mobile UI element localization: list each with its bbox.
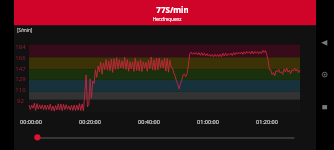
staticText: 110 <box>15 86 26 94</box>
button[interactable]: Home <box>317 67 333 83</box>
staticText: 01:20:00 <box>253 118 281 125</box>
staticText: 77S/min <box>156 4 188 15</box>
button[interactable]: Recent apps <box>317 99 333 115</box>
button[interactable]: Back <box>317 35 333 51</box>
staticText: Herzfrequenz <box>149 16 185 22</box>
staticText: 166 <box>15 54 26 62</box>
staticText: 01:00:00 <box>194 118 222 125</box>
staticText: 129 <box>15 75 26 83</box>
button[interactable]: 77S/min <box>14 0 316 25</box>
staticText: [S/min] <box>17 27 33 33</box>
staticText: 00:00:00 <box>17 118 45 125</box>
staticText: 00:20:00 <box>76 118 104 125</box>
staticText: 92 <box>15 97 26 105</box>
staticText: 184 <box>15 43 26 51</box>
staticText: 00:40:00 <box>135 118 163 125</box>
staticText: 147 <box>15 65 26 73</box>
